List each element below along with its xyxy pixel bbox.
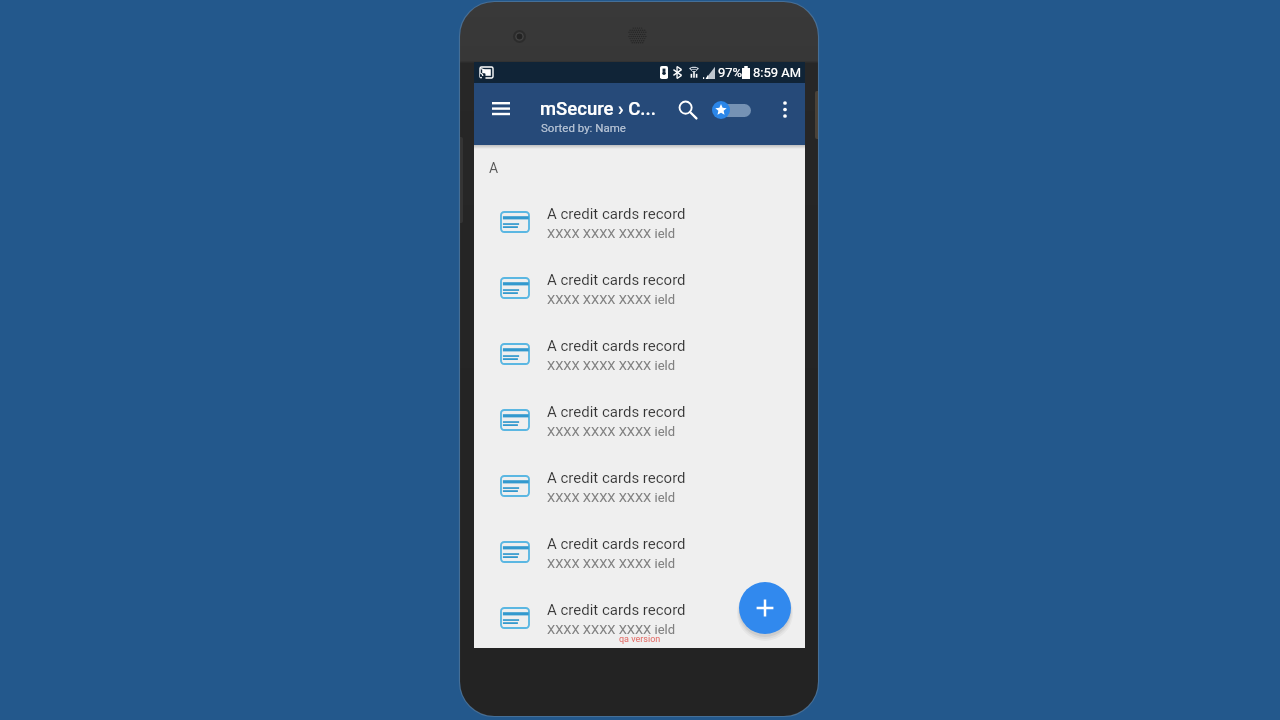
staticText: XXXX XXXX XXXX ield	[547, 358, 676, 373]
button[interactable]: Search	[667, 89, 707, 129]
staticText: XXXX XXXX XXXX ield	[547, 622, 676, 637]
staticText: A credit cards record	[547, 271, 686, 289]
staticText: A credit cards record	[547, 601, 686, 619]
button[interactable]: A credit cards record	[474, 190, 805, 256]
button[interactable]: Show favorites only	[706, 90, 754, 130]
button[interactable]: A credit cards record	[474, 586, 805, 648]
staticText: XXXX XXXX XXXX ield	[547, 490, 676, 505]
button[interactable]: A credit cards record	[474, 256, 805, 322]
staticText: qa version	[619, 634, 661, 645]
button[interactable]: A credit cards record	[474, 322, 805, 388]
button[interactable]: A credit cards record	[474, 388, 805, 454]
staticText: XXXX XXXX XXXX ield	[547, 226, 676, 241]
staticText: Sorted by: Name	[541, 121, 626, 134]
staticText: A credit cards record	[547, 535, 686, 553]
staticText: A	[489, 160, 499, 176]
button[interactable]: A credit cards record	[474, 520, 805, 586]
staticText: XXXX XXXX XXXX ield	[547, 292, 676, 307]
button[interactable]: Open navigation menu	[474, 83, 518, 135]
staticText: mSecure › C...	[540, 98, 656, 120]
staticText: A credit cards record	[547, 403, 686, 421]
button[interactable]: Add record	[739, 582, 791, 634]
staticText: XXXX XXXX XXXX ield	[547, 424, 676, 439]
staticText: 97%	[718, 65, 743, 80]
staticText: A credit cards record	[547, 337, 686, 355]
staticText: 8:59 AM	[753, 65, 802, 80]
staticText: A credit cards record	[547, 205, 686, 223]
staticText: A credit cards record	[547, 469, 686, 487]
staticText: XXXX XXXX XXXX ield	[547, 556, 676, 571]
button[interactable]: More options	[766, 89, 804, 129]
button[interactable]: A credit cards record	[474, 454, 805, 520]
